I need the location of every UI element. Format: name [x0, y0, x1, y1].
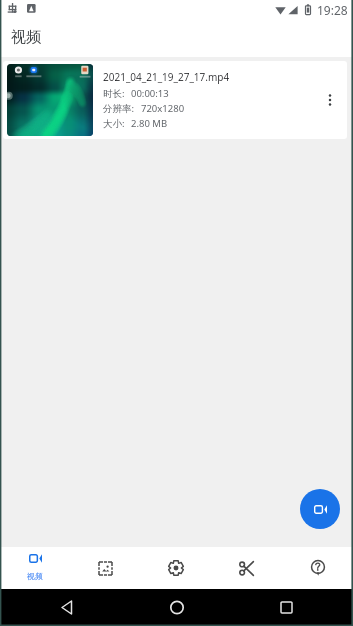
- staticText: 分辨率:: [103, 102, 135, 115]
- staticText: 时长:: [103, 87, 125, 100]
- staticText: 19:28: [317, 2, 348, 18]
- button[interactable]: More options: [318, 88, 342, 112]
- button[interactable]: Help: [282, 547, 353, 589]
- staticText: 00:00:13: [131, 87, 169, 100]
- button[interactable]: 视频: [0, 547, 70, 589]
- button[interactable]: Record video: [300, 489, 340, 529]
- button[interactable]: Gallery: [70, 547, 140, 589]
- staticText: 视频: [27, 571, 43, 581]
- staticText: 视频: [11, 28, 41, 47]
- staticText: 2.80 MB: [131, 117, 168, 130]
- staticText: 2021_04_21_19_27_17.mp4: [103, 70, 230, 84]
- button[interactable]: 2021_04_21_19_27_17.mp4: [3, 61, 347, 139]
- staticText: 720x1280: [141, 102, 185, 115]
- button[interactable]: Settings: [140, 547, 211, 589]
- staticText: 大小:: [103, 117, 125, 130]
- button[interactable]: Edit: [211, 547, 282, 589]
